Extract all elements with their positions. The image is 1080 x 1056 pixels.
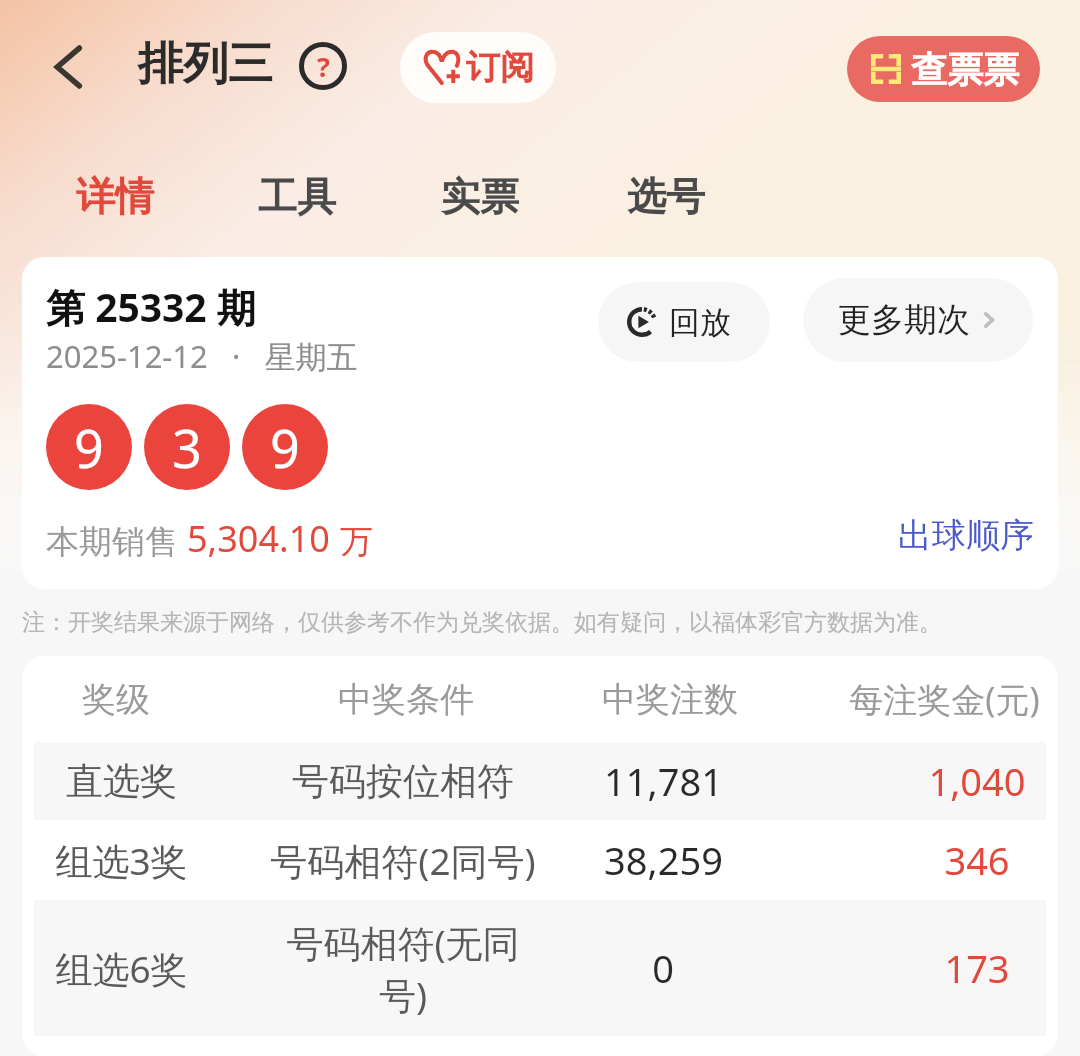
staticText: 详情 <box>76 172 154 221</box>
button[interactable]: Help <box>299 42 347 90</box>
staticText: 本期销售 <box>46 518 187 563</box>
staticText: 实票 <box>441 172 519 221</box>
staticText: 回放 <box>669 303 731 342</box>
staticText: 第 25332 期 <box>46 280 256 333</box>
button[interactable]: 回放 <box>598 282 770 362</box>
button[interactable]: 工具 <box>242 166 352 227</box>
staticText: 中奖条件 <box>338 678 474 721</box>
staticText: 更多期次 <box>838 299 970 341</box>
button[interactable]: 实票 <box>425 166 535 227</box>
staticText: 0 <box>652 942 674 994</box>
staticText: 组选6奖 <box>55 943 188 994</box>
staticText: 奖级 <box>82 678 150 721</box>
staticText: 2025-12-12 · 星期五 <box>46 335 358 377</box>
staticText: 38,259 <box>604 834 723 886</box>
staticText: 号码相符(无同 号) <box>286 917 520 1020</box>
staticText: 中奖注数 <box>602 678 738 721</box>
staticText: 订阅 <box>466 46 534 89</box>
button[interactable]: 更多期次 <box>803 278 1033 362</box>
staticText: 组选3奖 <box>55 835 188 886</box>
staticText: 9 <box>270 412 300 483</box>
staticText: 5,304.10 <box>187 514 340 563</box>
staticText: 11,781 <box>604 755 723 807</box>
staticText: 173 <box>944 942 1010 994</box>
staticText: 3 <box>172 412 202 483</box>
button[interactable]: Back <box>44 44 90 90</box>
staticText: 9 <box>74 412 104 483</box>
staticText: 查票票 <box>911 47 1019 92</box>
staticText: 346 <box>944 834 1010 886</box>
staticText: 每注奖金(元) <box>849 676 1040 722</box>
staticText: 注：开奖结果来源于网络，仅供参考不作为兑奖依据。如有疑问，以福体彩官方数据为准。 <box>22 608 942 637</box>
button[interactable]: 查票票 <box>847 36 1040 102</box>
staticText: 选号 <box>627 172 705 221</box>
button[interactable]: 订阅 <box>400 32 556 103</box>
staticText: 直选奖 <box>66 758 177 805</box>
staticText: 万 <box>340 521 373 563</box>
staticText: 号码按位相符 <box>292 758 514 805</box>
button[interactable]: 详情 <box>60 166 170 227</box>
button[interactable]: 出球顺序 <box>898 514 1034 557</box>
staticText: 1,040 <box>928 755 1026 807</box>
staticText: 排列三 <box>138 36 273 93</box>
staticText: ? <box>317 48 330 85</box>
staticText: 号码相符(2同号) <box>270 835 536 886</box>
staticText: 工具 <box>258 172 336 221</box>
button[interactable]: 选号 <box>611 166 721 227</box>
